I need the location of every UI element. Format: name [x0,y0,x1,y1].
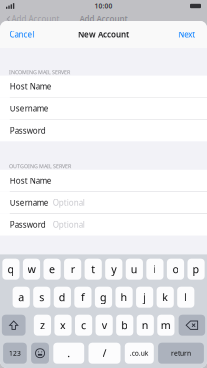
button[interactable]: d [54,287,71,308]
button[interactable]: Password [0,214,207,235]
staticText: 10:00 [94,2,112,10]
staticText: b [121,318,128,332]
staticText: Username [10,197,49,208]
button[interactable]: 123 [3,343,27,364]
button[interactable]: l [177,287,194,308]
staticText: Host Name [10,175,52,186]
staticText: Optional [53,197,85,208]
staticText: / [102,346,106,360]
button[interactable]: Host Name [0,76,207,97]
staticText: New Account [78,29,129,40]
button[interactable]: z [34,315,51,336]
staticText: v [102,318,107,332]
staticText: 123 [9,349,21,358]
button[interactable]: Username [0,98,207,119]
button[interactable]: w [23,259,40,280]
staticText: a [18,290,24,304]
button[interactable]: Delete [179,315,205,336]
staticText: Add Account [79,14,127,24]
staticText: Cancel [10,29,35,40]
button[interactable]: q [2,259,19,280]
staticText: .co.uk [130,349,149,358]
button[interactable]: h [115,287,133,308]
button[interactable]: Password [0,120,207,141]
staticText: return [171,349,191,358]
button[interactable]: Username [0,192,207,213]
button[interactable]: / [88,343,120,364]
button[interactable]: Shift [2,315,26,336]
staticText: INCOMING MAIL SERVER [9,68,70,76]
staticText: . [67,346,70,360]
button[interactable]: k [157,287,174,308]
button[interactable]: Cancel [0,24,43,45]
staticText: OUTGOING MAIL SERVER [9,163,71,170]
button[interactable]: j [136,287,153,308]
button[interactable]: b [116,315,133,336]
staticText: t [91,262,95,276]
button[interactable]: Emoji [31,343,49,364]
staticText: j [143,290,146,304]
staticText: p [193,262,200,276]
button[interactable]: y [105,259,122,280]
button[interactable]: c [75,315,92,336]
staticText: Next [178,29,195,40]
staticText: h [121,290,128,304]
button[interactable]: u [126,259,143,280]
button[interactable]: s [33,287,50,308]
button[interactable]: g [95,287,112,308]
button[interactable]: return [158,343,204,364]
button[interactable]: Host Name [0,170,207,191]
button[interactable]: r [64,259,81,280]
staticText: w [27,262,35,276]
staticText: k [162,290,168,304]
staticText: e [49,262,55,276]
staticText: Password [10,125,46,136]
staticText: r [71,262,75,276]
staticText: o [172,262,178,276]
staticText: q [7,262,14,276]
staticText: g [100,290,107,304]
button[interactable]: t [85,259,102,280]
button[interactable]: . [53,343,84,364]
button[interactable]: n [137,315,154,336]
button[interactable]: x [54,315,72,336]
staticText: n [142,318,149,332]
staticText: d [59,290,66,304]
staticText: Optional [53,219,85,230]
staticText: Username [10,103,49,114]
button[interactable]: i [146,259,163,280]
button[interactable]: o [167,259,184,280]
staticText: Password [10,219,46,230]
staticText: x [60,318,66,332]
staticText: s [39,290,44,304]
staticText: Host Name [10,81,52,92]
staticText: u [131,262,138,276]
button[interactable]: p [187,259,205,280]
staticText: f [81,290,85,304]
staticText: y [111,262,116,276]
button[interactable]: Next [170,24,207,45]
staticText: z [40,318,45,332]
staticText: c [81,318,86,332]
button[interactable]: f [74,287,91,308]
staticText: m [161,318,171,332]
staticText: Add Account [11,14,59,24]
button[interactable]: a [13,287,30,308]
button[interactable]: e [43,259,61,280]
staticText: l [184,290,187,304]
button[interactable]: m [157,315,174,336]
staticText: i [153,262,156,276]
button[interactable]: .co.uk [125,343,154,364]
button[interactable]: v [96,315,113,336]
